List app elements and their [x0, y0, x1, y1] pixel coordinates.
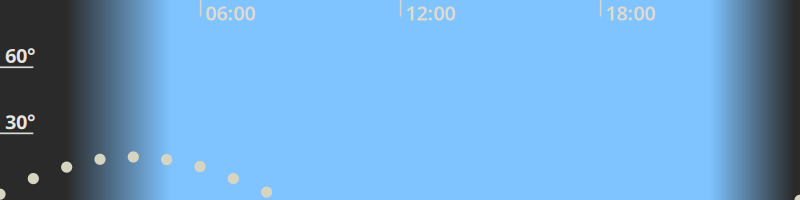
staticText: 06:00	[205, 0, 255, 26]
staticText: 30°	[5, 108, 35, 135]
button[interactable]: Sun altitude for today	[0, 0, 800, 200]
staticText: 12:00	[405, 0, 455, 26]
staticText: 60°	[5, 42, 35, 69]
staticText: 18:00	[605, 0, 655, 26]
